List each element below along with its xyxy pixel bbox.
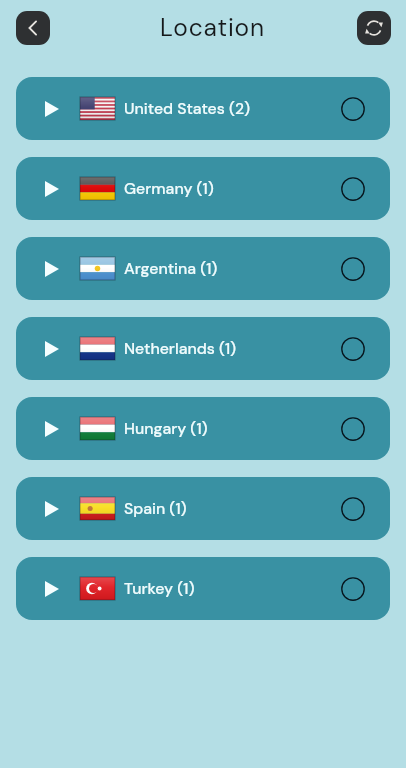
- staticText: Germany (1): [124, 178, 214, 199]
- button[interactable]: United States (2): [16, 77, 390, 140]
- button[interactable]: Netherlands (1): [16, 317, 390, 380]
- staticText: Hungary (1): [124, 418, 208, 439]
- button[interactable]: Spain (1): [16, 477, 390, 540]
- button[interactable]: Refresh: [357, 11, 391, 45]
- staticText: Turkey (1): [124, 578, 195, 599]
- button[interactable]: Argentina (1): [16, 237, 390, 300]
- staticText: Argentina (1): [124, 258, 218, 279]
- staticText: Netherlands (1): [124, 338, 237, 359]
- button[interactable]: Back: [16, 11, 50, 45]
- button[interactable]: Turkey (1): [16, 557, 390, 620]
- button[interactable]: Germany (1): [16, 157, 390, 220]
- staticText: Location: [160, 12, 265, 44]
- button[interactable]: Hungary (1): [16, 397, 390, 460]
- staticText: United States (2): [124, 98, 251, 119]
- staticText: Spain (1): [124, 498, 187, 519]
